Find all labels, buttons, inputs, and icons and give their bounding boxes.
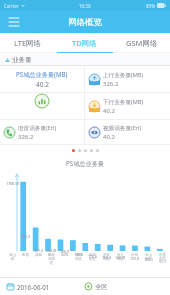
staticText: 109.1 — [144, 257, 153, 262]
button[interactable]: GSM网络 — [113, 33, 170, 52]
staticText: 绵阳 市区 — [75, 253, 82, 261]
staticText: 业务量 — [12, 56, 32, 64]
staticText: 视频话务量(Erl) — [103, 124, 142, 132]
button[interactable]: 语音话务量(Erl) — [0, 120, 84, 144]
staticText: LTE网络 — [14, 38, 42, 48]
button[interactable] — [78, 149, 81, 152]
staticText: 85% — [146, 3, 155, 9]
staticText: 泸州 — [131, 253, 138, 257]
staticText: 326.2 — [18, 133, 34, 141]
staticText: 40.2 — [36, 80, 49, 89]
staticText: 西昌 — [22, 253, 29, 257]
staticText: 网络概览 — [68, 17, 102, 28]
staticText: 40.2 — [103, 133, 115, 141]
button[interactable]: 全区 — [85, 278, 170, 295]
staticText: 乐山 市区 — [145, 253, 152, 261]
button[interactable]: 下行业务量(MB) — [85, 93, 170, 119]
staticText: 326.2 — [103, 80, 119, 88]
staticText: Carrier — [4, 3, 19, 9]
staticText: 140.31 — [115, 255, 126, 260]
staticText: 内江 市区 — [117, 253, 124, 261]
button[interactable] — [72, 149, 75, 152]
staticText: 40.2 — [103, 107, 115, 115]
staticText: 301.3 — [34, 248, 43, 253]
staticText: 宜宾 市区 — [103, 253, 110, 261]
button[interactable]: LTE网络 — [0, 33, 56, 52]
staticText: GSM网络 — [126, 38, 158, 48]
staticText: 全区 — [95, 283, 108, 291]
staticText: 1708.18 — [6, 181, 19, 186]
staticText: 2016-06-01 — [17, 283, 50, 291]
button[interactable] — [90, 149, 93, 152]
staticText: TD网络 — [72, 38, 97, 48]
staticText: 下行业务量(MB) — [103, 98, 144, 106]
staticText: 成都 — [35, 253, 42, 257]
staticText: 51.7 — [159, 259, 166, 264]
button[interactable]: 视频话务量(Erl) — [85, 120, 170, 144]
button[interactable]: PS域总业务量(MB) — [0, 66, 84, 92]
staticText: 南充 市区 — [89, 253, 96, 261]
staticText: 德阳 — [61, 253, 68, 257]
staticText: 10:30 — [79, 3, 91, 9]
staticText: 凉山 州 — [9, 253, 16, 261]
staticText: 语音话务量(Erl) — [18, 124, 57, 132]
staticText: 154.4 — [102, 255, 111, 260]
button[interactable]: Chart — [0, 93, 84, 119]
staticText: 175.6 — [88, 254, 97, 259]
staticText: PS域总业务量 — [66, 159, 105, 167]
staticText: 133.8 — [130, 256, 139, 261]
button[interactable] — [84, 149, 87, 152]
staticText: 266.9 — [60, 249, 69, 254]
button[interactable]: 上行业务量(MB) — [85, 66, 170, 92]
staticText: 自贡 市区 — [159, 253, 166, 261]
staticText: 284.41 — [46, 248, 57, 253]
staticText: PS域总业务量(MB) — [16, 70, 68, 78]
button[interactable]: Menu — [6, 14, 22, 30]
button[interactable] — [96, 149, 99, 152]
staticText: 198.8 — [74, 252, 83, 257]
staticText: 580.3 — [21, 234, 30, 239]
staticText: 上行业务量(MB) — [103, 71, 144, 79]
button[interactable]: 2016-06-01 — [0, 278, 85, 295]
staticText: 攀枝 花市 区 — [48, 253, 55, 265]
button[interactable]: TD网络 — [56, 33, 113, 52]
